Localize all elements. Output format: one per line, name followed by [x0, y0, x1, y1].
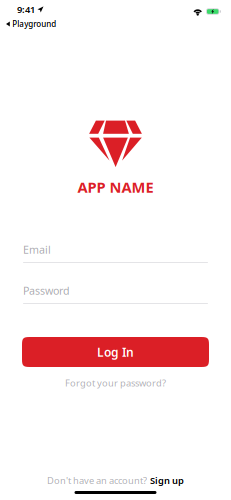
- staticText: APP NAME: [77, 177, 153, 197]
- staticText: Log In: [97, 344, 134, 360]
- button[interactable]: Email: [23, 244, 208, 263]
- staticText: Forgot your password?: [65, 377, 166, 389]
- staticText: 9:41: [17, 3, 35, 16]
- button[interactable]: Log In: [22, 337, 209, 367]
- staticText: Sign up: [150, 474, 184, 487]
- button[interactable]: Password: [23, 285, 208, 304]
- staticText: Email: [23, 242, 51, 257]
- staticText: Playground: [12, 19, 56, 29]
- staticText: Password: [23, 283, 70, 298]
- button[interactable]: Sign up: [150, 474, 184, 487]
- button[interactable]: Forgot your password?: [65, 378, 166, 388]
- staticText: Don't have an account?: [47, 474, 147, 487]
